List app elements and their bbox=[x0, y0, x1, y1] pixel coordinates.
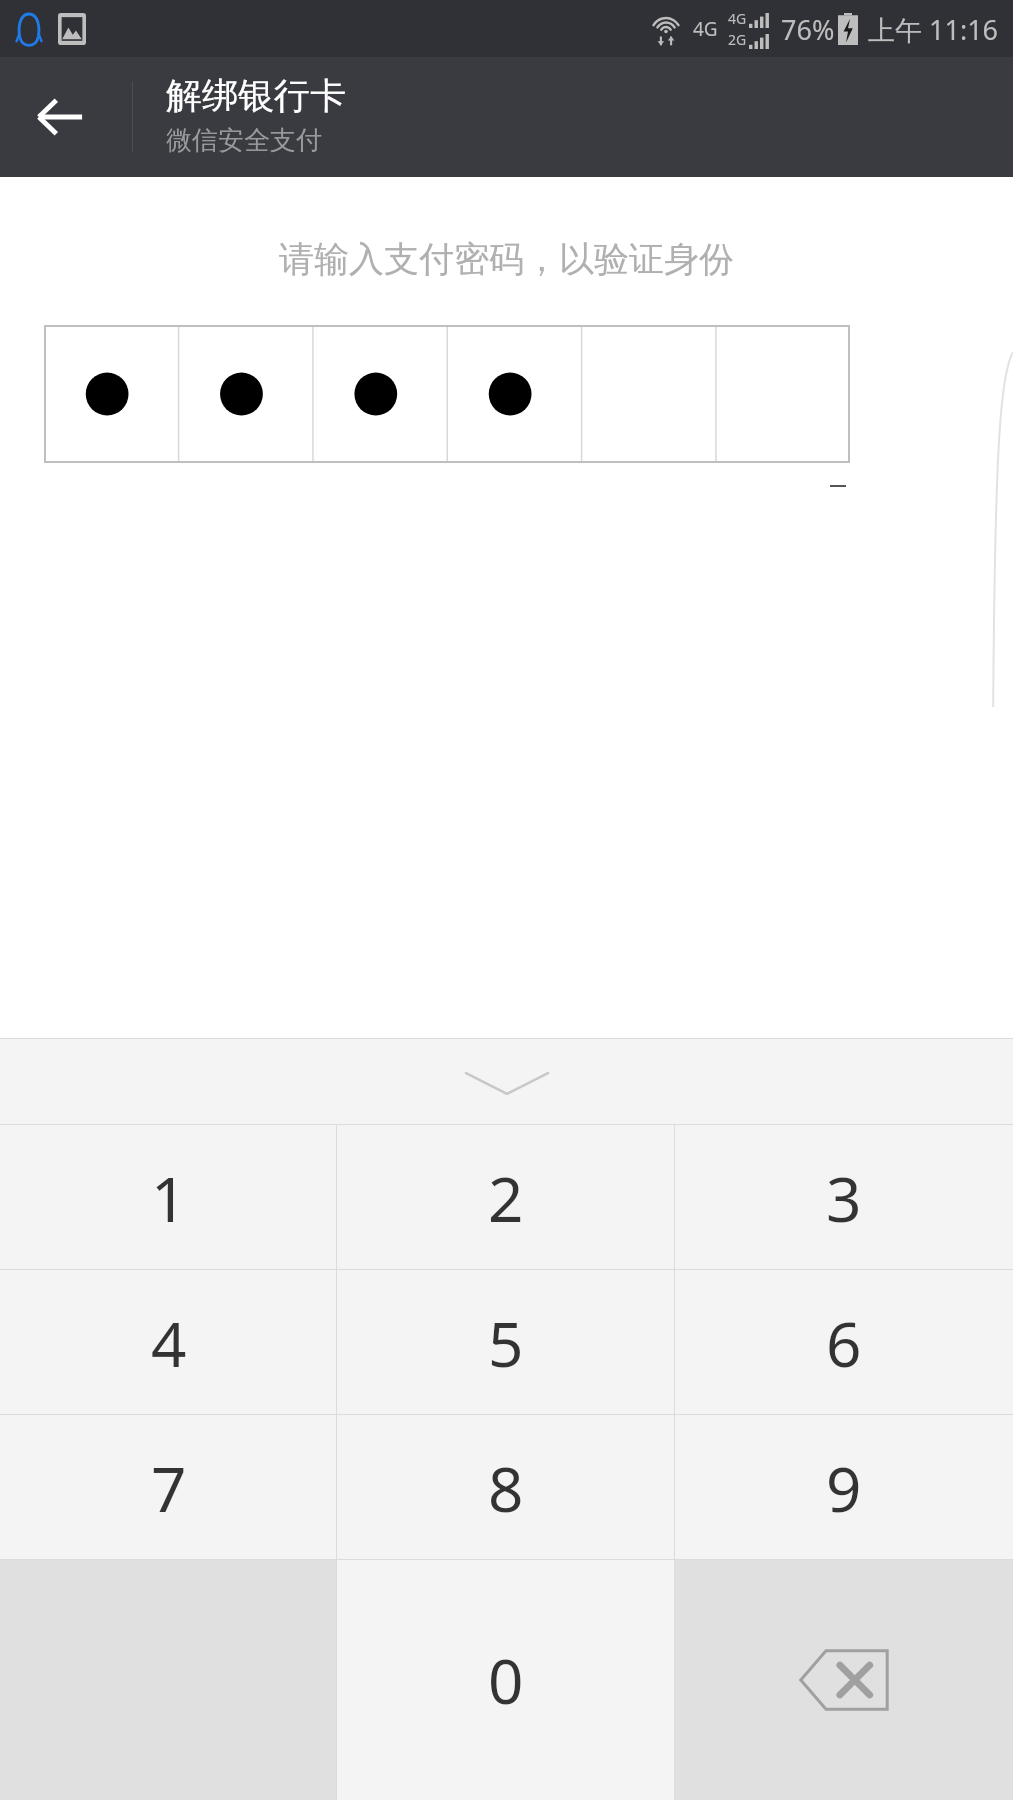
button[interactable]: 9 bbox=[675, 1415, 1013, 1560]
button[interactable]: 2 bbox=[337, 1125, 675, 1270]
button[interactable]: Hide keyboard bbox=[0, 1038, 1013, 1125]
staticText: 2G bbox=[728, 30, 747, 49]
staticText: 4G bbox=[728, 9, 747, 28]
button[interactable]: 5 bbox=[337, 1270, 675, 1415]
button[interactable]: Backspace bbox=[675, 1560, 1013, 1800]
button[interactable]: 3 bbox=[675, 1125, 1013, 1270]
button[interactable]: 7 bbox=[0, 1415, 337, 1560]
button[interactable]: 6 bbox=[675, 1270, 1013, 1415]
staticText: 6 bbox=[826, 1301, 862, 1385]
staticText: 解绑银行卡 bbox=[166, 73, 346, 118]
button[interactable]: 4 bbox=[0, 1270, 337, 1415]
staticText: 0 bbox=[488, 1638, 524, 1722]
staticText: 4G bbox=[693, 16, 718, 42]
staticText: 请输入支付密码，以验证身份 bbox=[279, 237, 734, 281]
button[interactable]: 0 bbox=[337, 1560, 675, 1800]
staticText: 5 bbox=[488, 1301, 524, 1385]
button[interactable]: Back bbox=[0, 57, 120, 177]
staticText: 2 bbox=[488, 1156, 524, 1240]
staticText: 8 bbox=[488, 1446, 524, 1530]
button[interactable]: 8 bbox=[337, 1415, 675, 1560]
staticText: 9 bbox=[826, 1446, 862, 1530]
staticText: 1 bbox=[151, 1156, 187, 1240]
staticText: 4 bbox=[151, 1301, 187, 1385]
button[interactable]: 1 bbox=[0, 1125, 337, 1270]
staticText: 上午 11:16 bbox=[868, 11, 999, 48]
staticText: 76% bbox=[781, 11, 835, 48]
staticText: 7 bbox=[151, 1446, 187, 1530]
staticText: 微信安全支付 bbox=[166, 124, 322, 157]
staticText: 3 bbox=[826, 1156, 862, 1240]
button[interactable] bbox=[44, 325, 850, 463]
